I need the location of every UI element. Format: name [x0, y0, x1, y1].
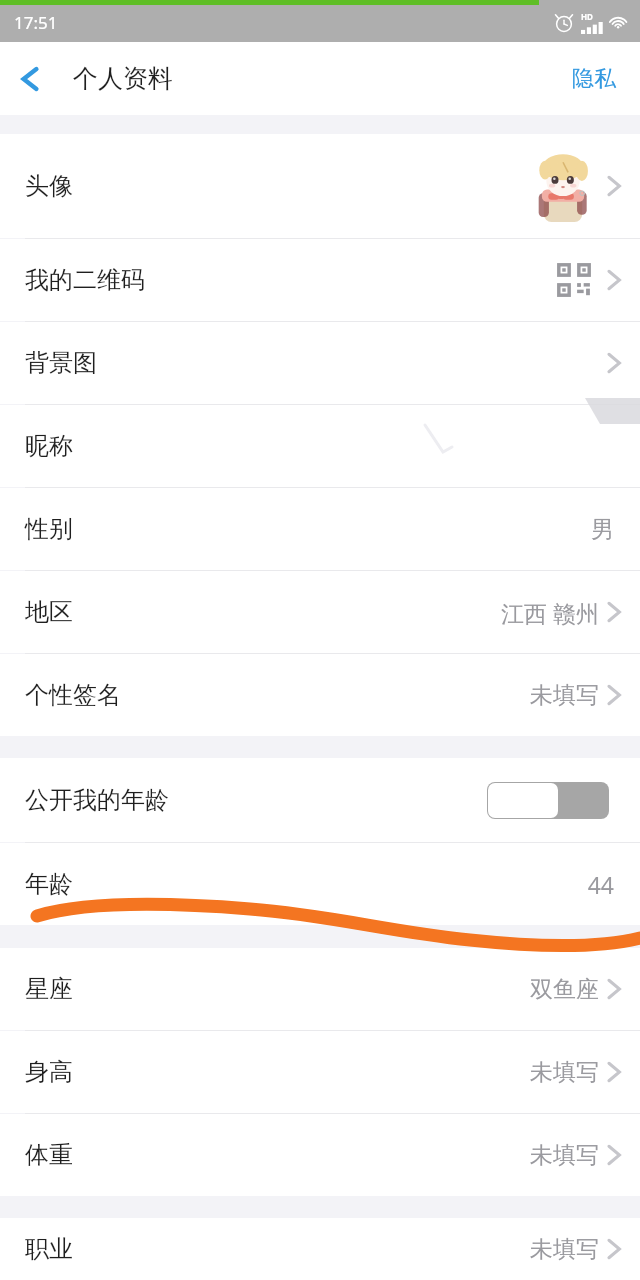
staticText: 17:51 — [14, 11, 58, 34]
staticText: HD — [581, 11, 593, 22]
staticText: 江西 赣州 — [501, 597, 599, 628]
button[interactable]: 头像 — [0, 134, 640, 238]
staticText: 地区 — [25, 597, 73, 627]
button[interactable]: 公开我的年龄 开关 — [487, 782, 609, 819]
staticText: 星座 — [25, 974, 73, 1004]
staticText: 头像 — [25, 171, 73, 201]
button[interactable]: 年龄 — [0, 843, 640, 925]
staticText: 男 — [591, 515, 614, 544]
button[interactable]: 地区 — [0, 571, 640, 653]
staticText: 我的二维码 — [25, 265, 145, 295]
button[interactable]: 体重 — [0, 1114, 640, 1196]
staticText: 体重 — [25, 1140, 73, 1170]
button[interactable]: 背景图 — [0, 322, 640, 404]
staticText: 背景图 — [25, 348, 97, 378]
staticText: 未填写 — [530, 681, 599, 710]
staticText: 44 — [587, 869, 614, 900]
staticText: 性别 — [25, 514, 73, 544]
button[interactable]: 身高 — [0, 1031, 640, 1113]
button[interactable]: 职业 — [0, 1218, 640, 1280]
staticText: 身高 — [25, 1057, 73, 1087]
button[interactable]: 星座 — [0, 948, 640, 1030]
staticText: 昵称 — [25, 431, 73, 461]
staticText: 公开我的年龄 — [25, 785, 169, 815]
button[interactable]: 性别 — [0, 488, 640, 570]
staticText: 未填写 — [530, 1235, 599, 1264]
button[interactable]: Back — [0, 52, 52, 106]
button[interactable]: 昵称 — [0, 405, 640, 487]
staticText: 个性签名 — [25, 680, 121, 710]
staticText: 年龄 — [25, 869, 73, 899]
staticText: 职业 — [25, 1234, 73, 1264]
button[interactable]: 个性签名 — [0, 654, 640, 736]
staticText: 双鱼座 — [530, 975, 599, 1004]
staticText: 未填写 — [530, 1058, 599, 1087]
button[interactable]: 公开我的年龄 — [0, 758, 640, 842]
staticText: 个人资料 — [73, 63, 173, 94]
button[interactable]: 我的二维码 — [0, 239, 640, 321]
button[interactable]: 隐私 — [548, 51, 640, 107]
staticText: 隐私 — [572, 65, 616, 93]
staticText: 未填写 — [530, 1141, 599, 1170]
